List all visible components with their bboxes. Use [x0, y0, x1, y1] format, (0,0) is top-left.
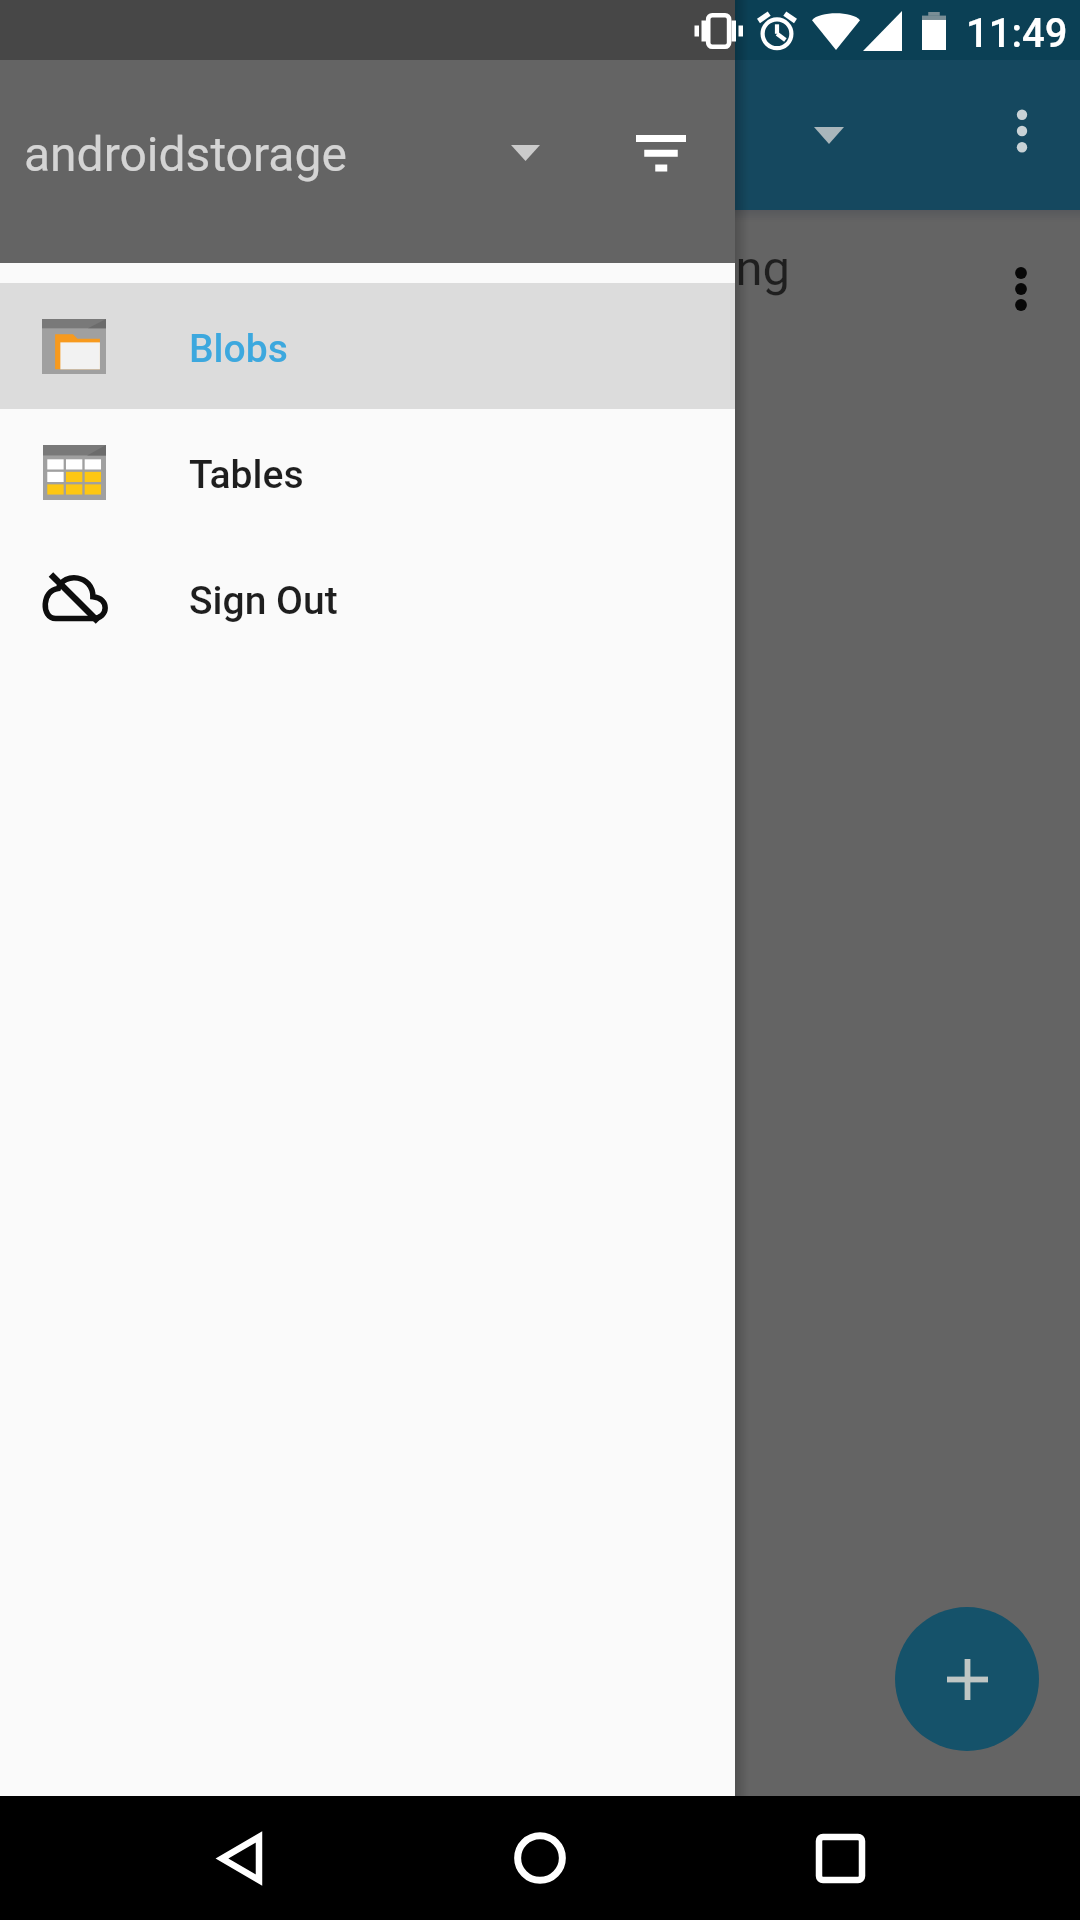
button[interactable]: Tables	[0, 409, 735, 535]
staticText: Sign Out	[189, 578, 338, 624]
button[interactable]: More options	[968, 77, 1076, 185]
button[interactable]: Add	[895, 1607, 1039, 1751]
button[interactable]: containerwithaverylongname-long	[0, 210, 1080, 318]
staticText: containerwithaverylongname-long	[52, 240, 791, 297]
staticText: Blobs	[189, 326, 288, 372]
staticText: androidstorage	[24, 126, 347, 182]
button[interactable]: Blobs	[0, 283, 735, 409]
button[interactable]: Sign Out	[0, 535, 735, 661]
button[interactable]: Home	[480, 1798, 600, 1918]
button[interactable]: Recent apps	[780, 1798, 900, 1918]
button[interactable]: Item options	[966, 235, 1076, 343]
button[interactable]: Expand	[781, 87, 877, 183]
button[interactable]: Back	[180, 1798, 300, 1918]
button[interactable]: Expand	[477, 105, 573, 201]
staticText: Tables	[189, 452, 304, 498]
staticText: 11:49	[966, 10, 1068, 57]
button[interactable]: Filter	[606, 98, 716, 208]
